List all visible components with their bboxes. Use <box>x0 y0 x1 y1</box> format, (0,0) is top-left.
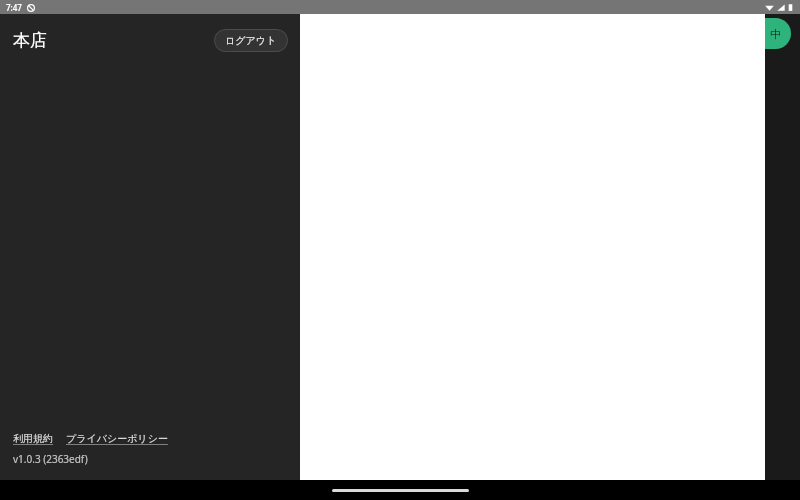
staticText: ログアウト <box>225 34 277 47</box>
staticText: 7:47 <box>6 2 22 13</box>
staticText: v1.0.3 (2363edf) <box>13 452 88 466</box>
button[interactable]: ログアウト <box>214 29 288 52</box>
button[interactable]: 営業中 <box>757 18 791 49</box>
staticText: 本店 <box>13 30 47 51</box>
button[interactable]: プライバシーポリシー <box>66 432 168 445</box>
staticText: 中 <box>770 27 781 41</box>
button[interactable]: 利用規約 <box>13 432 53 445</box>
staticText: 利用規約 <box>13 432 53 445</box>
staticText: プライバシーポリシー <box>66 432 168 445</box>
